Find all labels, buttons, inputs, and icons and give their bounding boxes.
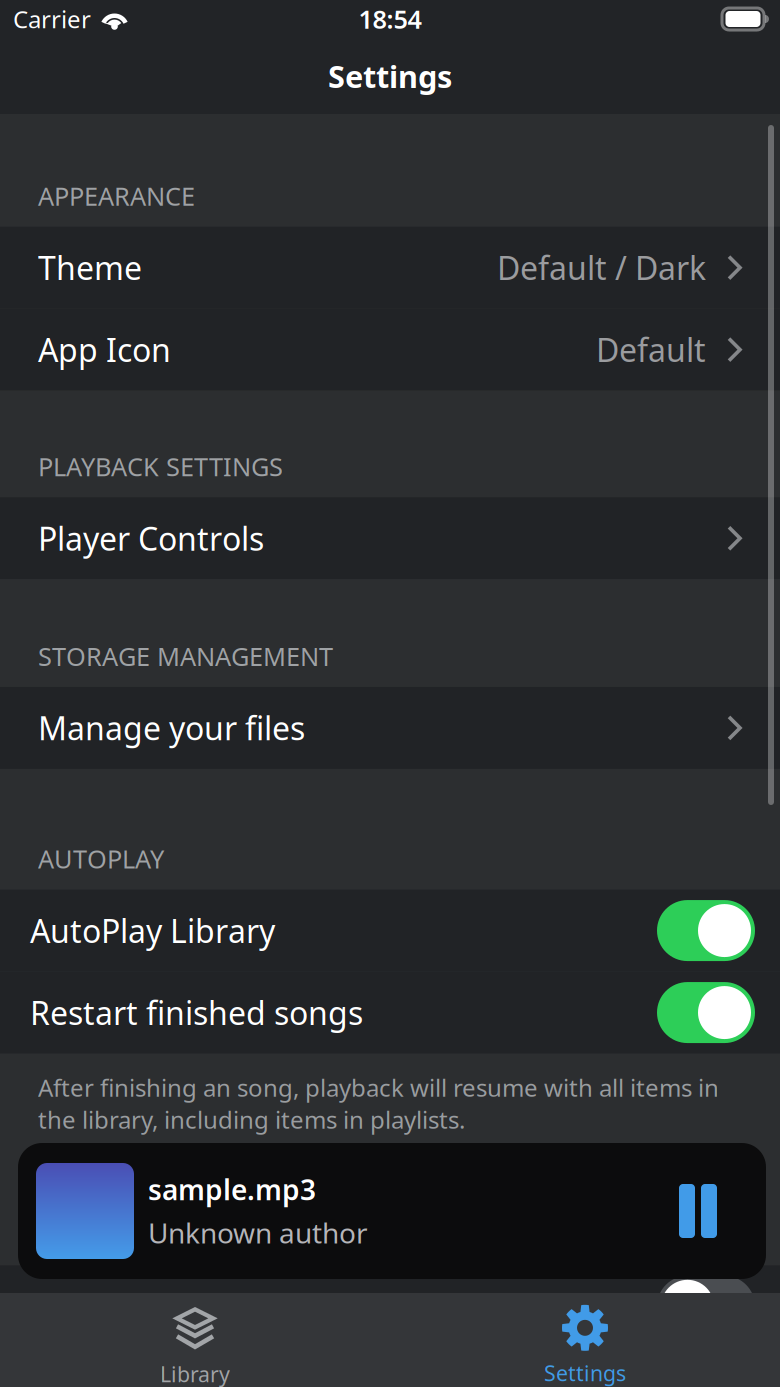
button[interactable]: sample.mp3 <box>18 1143 766 1279</box>
button[interactable]: Settings <box>390 1293 780 1387</box>
staticText: sample.mp3 <box>148 1171 316 1208</box>
button[interactable]: App Icon <box>0 309 780 391</box>
staticText: Settings <box>544 1359 626 1387</box>
button[interactable]: Theme <box>0 227 780 309</box>
staticText: AutoPlay Library <box>30 909 275 952</box>
staticText: Manage your files <box>38 707 305 749</box>
staticText: AUTOPLAY <box>38 842 164 875</box>
button[interactable]: AutoPlay Library <box>657 900 755 961</box>
staticText: App Icon <box>38 328 171 371</box>
staticText: Restart finished songs <box>30 991 363 1034</box>
staticText: APPEARANCE <box>38 179 195 213</box>
button[interactable]: Manage your files <box>0 687 780 769</box>
staticText: Carrier <box>13 3 91 35</box>
staticText: Default <box>596 328 706 371</box>
button[interactable]: Only download over wi-fi <box>657 1276 755 1337</box>
staticText: Library <box>160 1360 230 1387</box>
staticText: Player Controls <box>38 517 264 559</box>
staticText: STORAGE MANAGEMENT <box>38 639 333 673</box>
staticText: Settings <box>328 56 452 96</box>
button[interactable]: Restart finished songs <box>657 982 755 1043</box>
staticText: 18:54 <box>358 2 421 36</box>
button[interactable]: Library <box>0 1292 390 1387</box>
staticText: After finishing an song, playback will r… <box>38 1072 719 1135</box>
staticText: Theme <box>38 246 142 289</box>
button[interactable]: Player Controls <box>0 497 780 579</box>
staticText: Default / Dark <box>497 246 706 289</box>
staticText: PLAYBACK SETTINGS <box>38 450 283 483</box>
staticText: Only download over wi-fi <box>30 1285 400 1328</box>
staticText: Unknown author <box>148 1214 368 1251</box>
